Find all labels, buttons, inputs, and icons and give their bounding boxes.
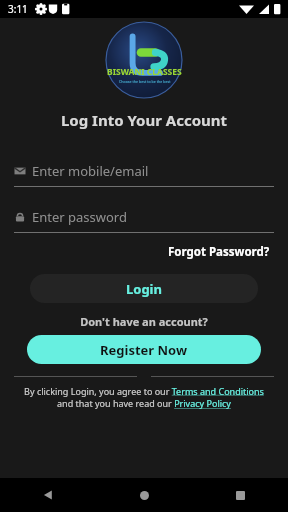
staticText: BISWANI CLASSES xyxy=(107,66,182,78)
staticText: Don't have an account? xyxy=(0,314,288,329)
button[interactable]: By clicking Login, you agree to our Term… xyxy=(20,385,268,410)
staticText: Enter password xyxy=(32,208,127,226)
staticText: Enter mobile/email xyxy=(32,162,149,180)
button[interactable]: Forgot Password? xyxy=(166,242,272,262)
staticText: By clicking Login, you agree to our Term… xyxy=(20,385,268,410)
button[interactable]: Enter password xyxy=(14,208,274,233)
button[interactable]: Recent apps xyxy=(192,478,288,512)
button[interactable]: Login xyxy=(30,274,258,303)
staticText: Log Into Your Account xyxy=(0,110,288,130)
staticText: Register Now xyxy=(100,341,188,359)
staticText: Login xyxy=(126,280,162,298)
staticText: Forgot Password? xyxy=(168,244,270,260)
staticText: 3:11 xyxy=(8,2,28,16)
staticText: Choose the best to be the best xyxy=(119,79,171,84)
button[interactable]: Back xyxy=(0,478,96,512)
button[interactable]: Home xyxy=(96,478,192,512)
button[interactable]: Register Now xyxy=(27,335,261,364)
button[interactable]: Enter mobile/email xyxy=(14,162,274,187)
